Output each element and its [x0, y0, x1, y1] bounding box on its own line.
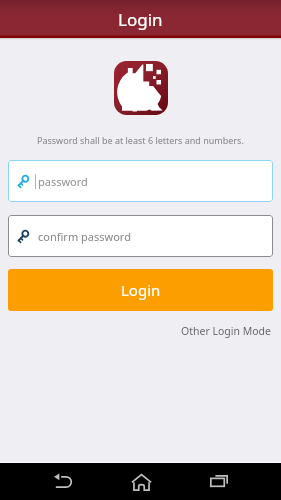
- staticText: Password shall be at least 6 letters and…: [37, 134, 244, 146]
- button[interactable]: Recent apps: [180, 463, 258, 500]
- button[interactable]: password: [8, 160, 273, 202]
- button[interactable]: confirm password: [8, 215, 273, 257]
- button[interactable]: Login: [8, 269, 273, 311]
- staticText: Login: [121, 280, 161, 300]
- button[interactable]: Other Login Mode: [181, 324, 271, 338]
- staticText: Login: [118, 8, 163, 31]
- button[interactable]: Home: [102, 463, 180, 500]
- button[interactable]: Back: [24, 463, 102, 500]
- staticText: confirm password: [38, 229, 131, 244]
- staticText: password: [38, 174, 88, 189]
